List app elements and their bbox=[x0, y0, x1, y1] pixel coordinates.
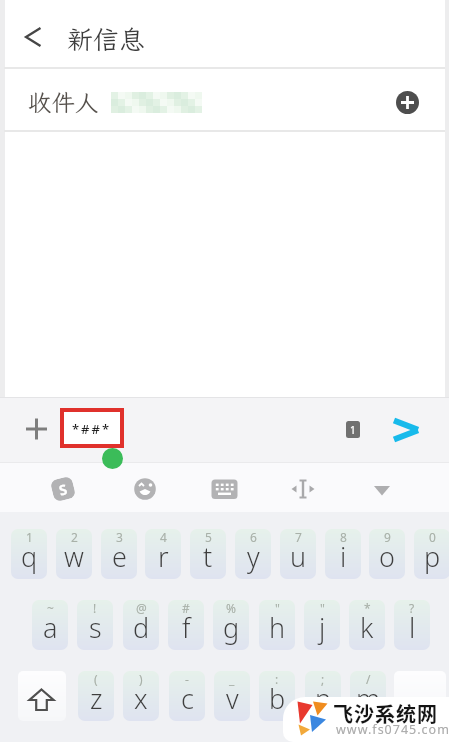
staticText: g bbox=[223, 609, 240, 646]
staticText: y bbox=[247, 538, 260, 575]
button[interactable]: ! bbox=[77, 600, 113, 650]
staticText: w bbox=[64, 538, 84, 575]
staticText: k bbox=[360, 609, 374, 646]
button[interactable]: 1 bbox=[11, 529, 47, 579]
button[interactable] bbox=[370, 481, 394, 499]
staticText: www.fs0745.com bbox=[336, 721, 449, 738]
button[interactable]: - bbox=[169, 671, 205, 721]
button[interactable]: 9 bbox=[369, 529, 405, 579]
staticText: ~ bbox=[47, 600, 54, 616]
staticText: f bbox=[182, 609, 191, 646]
staticText: 2 bbox=[71, 529, 78, 545]
staticText: n bbox=[315, 680, 332, 717]
button[interactable]: : bbox=[259, 671, 295, 721]
staticText: h bbox=[269, 609, 286, 646]
button[interactable]: 1 bbox=[346, 421, 360, 438]
staticText: l bbox=[409, 609, 416, 646]
staticText: S bbox=[57, 479, 69, 500]
button[interactable] bbox=[14, 22, 48, 52]
staticText: 3 bbox=[116, 529, 123, 545]
button[interactable] bbox=[394, 671, 446, 721]
staticText: v bbox=[226, 680, 239, 717]
button[interactable]: S bbox=[50, 476, 76, 502]
staticText: *##* bbox=[72, 420, 112, 438]
staticText: ! bbox=[93, 600, 97, 616]
button[interactable]: " bbox=[304, 600, 340, 650]
staticText: 1 bbox=[350, 423, 356, 437]
button[interactable]: " bbox=[259, 600, 295, 650]
staticText: @ bbox=[136, 600, 147, 616]
staticText: / bbox=[366, 671, 371, 687]
staticText: d bbox=[133, 609, 150, 646]
staticText: * bbox=[364, 600, 371, 616]
button[interactable]: 2 bbox=[56, 529, 92, 579]
staticText: " bbox=[275, 600, 280, 616]
button[interactable]: ( bbox=[78, 671, 114, 721]
staticText: 飞沙系统网 bbox=[333, 699, 438, 728]
staticText: ? bbox=[409, 600, 415, 616]
button[interactable]: ~ bbox=[32, 600, 68, 650]
button[interactable]: 3 bbox=[101, 529, 137, 579]
button[interactable]: * bbox=[349, 600, 385, 650]
button[interactable] bbox=[132, 476, 158, 502]
button[interactable]: 0 bbox=[414, 529, 449, 579]
staticText: 8 bbox=[340, 529, 347, 545]
staticText: _ bbox=[229, 671, 235, 687]
button[interactable]: *##* bbox=[60, 408, 124, 448]
button[interactable]: ; bbox=[305, 671, 341, 721]
staticText: b bbox=[269, 680, 286, 717]
staticText: r bbox=[158, 538, 169, 575]
staticText: u bbox=[290, 538, 307, 575]
staticText: j bbox=[319, 609, 326, 646]
staticText: 4 bbox=[160, 529, 167, 545]
button[interactable]: ) bbox=[123, 671, 159, 721]
staticText: ( bbox=[94, 671, 98, 687]
staticText: i bbox=[340, 538, 347, 575]
button[interactable] bbox=[210, 477, 239, 501]
staticText: : bbox=[275, 671, 279, 687]
staticText: m bbox=[356, 680, 381, 717]
button[interactable]: 4 bbox=[145, 529, 181, 579]
staticText: 6 bbox=[250, 529, 257, 545]
button[interactable]: 6 bbox=[235, 529, 271, 579]
staticText: ) bbox=[139, 671, 143, 687]
button[interactable]: 5 bbox=[190, 529, 226, 579]
button[interactable] bbox=[289, 477, 317, 501]
staticText: 5 bbox=[205, 529, 212, 545]
staticText: " bbox=[320, 600, 325, 616]
button[interactable] bbox=[18, 671, 66, 721]
button[interactable]: 8 bbox=[325, 529, 361, 579]
button[interactable] bbox=[23, 415, 50, 443]
button[interactable] bbox=[388, 413, 424, 447]
staticText: p bbox=[424, 538, 441, 575]
staticText: c bbox=[181, 680, 194, 717]
staticText: a bbox=[43, 609, 58, 646]
staticText: q bbox=[21, 538, 38, 575]
staticText: % bbox=[226, 600, 236, 616]
staticText: x bbox=[134, 680, 148, 717]
button[interactable]: _ bbox=[214, 671, 250, 721]
staticText: o bbox=[379, 538, 395, 575]
staticText: z bbox=[90, 680, 103, 717]
staticText: t bbox=[203, 538, 213, 575]
button[interactable]: % bbox=[213, 600, 249, 650]
staticText: ; bbox=[321, 671, 325, 687]
staticText: 7 bbox=[295, 529, 302, 545]
staticText: e bbox=[112, 538, 127, 575]
button[interactable]: 7 bbox=[280, 529, 316, 579]
button[interactable]: ? bbox=[394, 600, 430, 650]
staticText: - bbox=[185, 671, 189, 687]
staticText: 9 bbox=[384, 529, 391, 545]
staticText: 0 bbox=[429, 529, 436, 545]
button[interactable] bbox=[396, 91, 419, 114]
button[interactable]: # bbox=[168, 600, 204, 650]
staticText: 新信息 bbox=[67, 22, 146, 56]
staticText: 1 bbox=[26, 529, 33, 545]
button[interactable]: / bbox=[350, 671, 386, 721]
staticText: 收件人 bbox=[28, 87, 99, 118]
staticText: s bbox=[89, 609, 102, 646]
button[interactable]: @ bbox=[123, 600, 159, 650]
staticText: # bbox=[182, 600, 190, 616]
